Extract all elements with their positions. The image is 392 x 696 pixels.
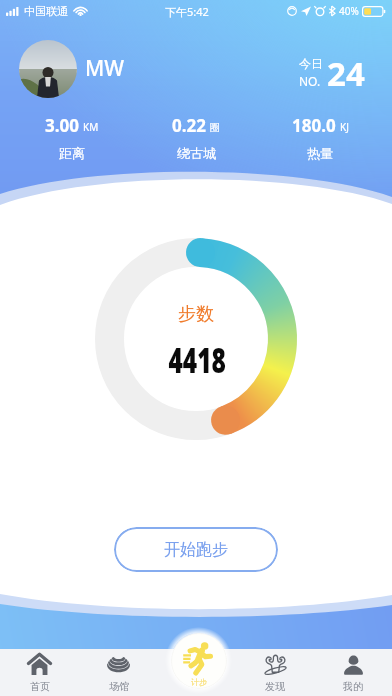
staticText: 180.0 [292,114,336,137]
staticText: 发现 [265,680,285,693]
staticText: 场馆 [109,680,129,693]
staticText: 0.22 [172,114,206,137]
staticText: 首页 [30,680,50,693]
staticText: KJ [340,120,349,134]
staticText: 热量 [307,145,333,161]
staticText: 今日 [299,56,323,71]
button[interactable]: Profile photo [19,40,77,98]
staticText: 计步 [191,677,207,687]
staticText: 40% [339,4,359,18]
staticText: 绕古城 [177,145,216,161]
staticText: NO. [299,73,321,89]
staticText: 4418 [168,335,226,384]
button[interactable]: 我的 [314,649,392,696]
staticText: KM [83,120,99,134]
staticText: 步数 [178,303,214,326]
staticText: 圈 [210,121,220,134]
button[interactable]: 计步 [171,633,227,689]
staticText: 我的 [343,680,363,693]
button[interactable]: 首页 [0,649,79,696]
staticText: 3.00 [45,114,79,137]
staticText: 中国联通 [24,4,68,18]
staticText: 开始跑步 [164,540,228,560]
button[interactable]: 场馆 [79,649,158,696]
staticText: MW [85,54,125,83]
button[interactable]: 发现 [236,649,314,696]
staticText: 下午5:42 [165,4,209,19]
staticText: 距离 [59,145,85,161]
staticText: 24 [327,51,365,96]
button[interactable]: 开始跑步 [114,527,278,572]
